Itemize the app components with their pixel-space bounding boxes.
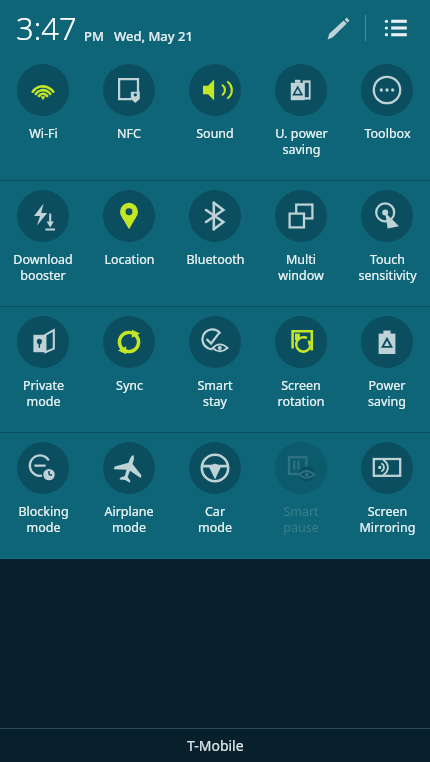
- button[interactable]: Smart stay: [172, 307, 258, 432]
- button[interactable]: Download booster: [0, 181, 86, 306]
- button[interactable]: Multi window: [258, 181, 344, 306]
- staticText: Sync: [116, 377, 143, 394]
- staticText: Bluetooth: [186, 251, 245, 268]
- staticText: 3:47: [16, 7, 77, 49]
- button[interactable]: Power saving: [344, 307, 430, 432]
- button[interactable]: Screen rotation: [258, 307, 344, 432]
- button[interactable]: Location: [86, 181, 172, 306]
- staticText: Toolbox: [364, 125, 411, 142]
- staticText: Smart pause: [283, 503, 319, 535]
- button[interactable]: Wi-Fi: [0, 55, 86, 180]
- button[interactable]: Touch sensitivity: [344, 181, 430, 306]
- staticText: Screen rotation: [277, 377, 325, 409]
- staticText: Wi-Fi: [29, 125, 58, 142]
- staticText: Sound: [196, 125, 234, 142]
- button[interactable]: Toolbox: [344, 55, 430, 180]
- staticText: Smart stay: [197, 377, 233, 409]
- button[interactable]: Private mode: [0, 307, 86, 432]
- staticText: U. power saving: [275, 125, 328, 157]
- button[interactable]: Screen Mirroring: [344, 433, 430, 558]
- staticText: Airplane mode: [104, 503, 154, 535]
- staticText: Private mode: [23, 377, 64, 409]
- button[interactable]: Smart pause: [258, 433, 344, 558]
- staticText: Multi window: [278, 251, 324, 283]
- button[interactable]: NFC: [86, 55, 172, 180]
- button[interactable]: Sync: [86, 307, 172, 432]
- staticText: Touch sensitivity: [358, 251, 417, 283]
- button[interactable]: Car mode: [172, 433, 258, 558]
- staticText: PM: [84, 27, 104, 45]
- staticText: Car mode: [198, 503, 232, 535]
- button[interactable]: Airplane mode: [86, 433, 172, 558]
- staticText: Blocking mode: [18, 503, 69, 535]
- staticText: Download booster: [13, 251, 73, 283]
- staticText: Screen Mirroring: [359, 503, 416, 535]
- staticText: Power saving: [368, 377, 406, 409]
- button[interactable]: Edit: [317, 8, 357, 48]
- button[interactable]: Blocking mode: [0, 433, 86, 558]
- button[interactable]: Sound: [172, 55, 258, 180]
- button[interactable]: U. power saving: [258, 55, 344, 180]
- staticText: Location: [104, 251, 155, 268]
- button[interactable]: Bluetooth: [172, 181, 258, 306]
- staticText: NFC: [117, 125, 141, 142]
- staticText: Wed, May 21: [114, 27, 193, 45]
- staticText: T-Mobile: [187, 736, 244, 755]
- button[interactable]: Settings list: [376, 8, 416, 48]
